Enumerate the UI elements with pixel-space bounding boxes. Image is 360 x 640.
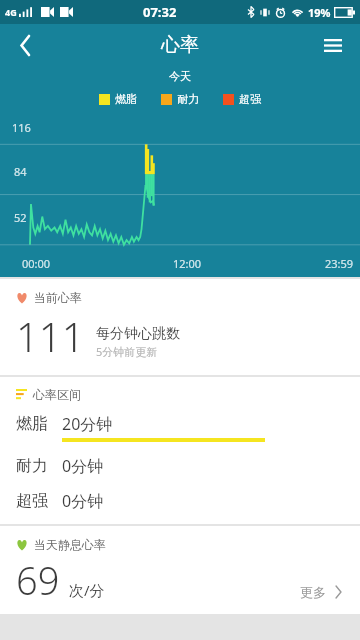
button[interactable]: 心率区间 bbox=[0, 377, 360, 524]
staticText: 心率区间 bbox=[33, 387, 81, 402]
staticText: 12:00 bbox=[173, 256, 202, 271]
staticText: 心率 bbox=[161, 33, 199, 57]
staticText: 耐力 bbox=[177, 92, 199, 106]
staticText: 次/分 bbox=[69, 580, 105, 600]
button[interactable]: 更多 bbox=[294, 578, 348, 606]
staticText: 当前心率 bbox=[34, 290, 82, 305]
staticText: 每分钟心跳数 bbox=[96, 325, 180, 343]
staticText: 今天 bbox=[0, 69, 360, 83]
staticText: 69 bbox=[16, 554, 60, 606]
staticText: 耐力 bbox=[16, 456, 62, 476]
staticText: 23:59 bbox=[325, 256, 354, 271]
staticText: 超强 bbox=[16, 491, 62, 511]
staticText: 当天静息心率 bbox=[34, 537, 106, 552]
staticText: 4G bbox=[5, 6, 17, 18]
staticText: 19% bbox=[308, 5, 331, 20]
staticText: 更多 bbox=[300, 584, 326, 600]
staticText: 0分钟 bbox=[62, 490, 104, 512]
button[interactable]: Back bbox=[4, 24, 46, 66]
staticText: 0分钟 bbox=[62, 455, 104, 477]
staticText: 燃脂 bbox=[115, 92, 137, 106]
staticText: 超强 bbox=[239, 92, 261, 106]
staticText: 5分钟前更新 bbox=[96, 344, 158, 359]
button[interactable]: Menu bbox=[312, 24, 354, 66]
button[interactable]: 当前心率 bbox=[0, 279, 360, 375]
staticText: 燃脂 bbox=[16, 414, 62, 434]
staticText: 111 bbox=[16, 309, 85, 363]
staticText: 84 bbox=[14, 164, 27, 179]
staticText: 00:00 bbox=[22, 256, 51, 271]
staticText: 116 bbox=[12, 120, 31, 135]
staticText: 07:32 bbox=[143, 3, 177, 21]
staticText: 20分钟 bbox=[62, 413, 113, 435]
staticText: 52 bbox=[14, 210, 27, 225]
